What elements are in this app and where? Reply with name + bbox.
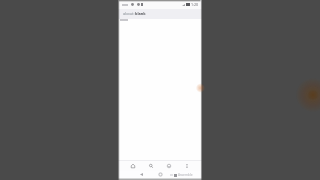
staticText: blank <box>135 11 146 16</box>
button[interactable]: Search <box>145 161 156 171</box>
staticText: Assemble <box>178 173 193 177</box>
button[interactable]: Tabs <box>163 161 174 171</box>
button[interactable]: Home <box>155 171 165 178</box>
button[interactable]: More options <box>181 161 192 171</box>
button[interactable]: Home <box>127 161 138 171</box>
staticText: 1:20 <box>191 2 199 7</box>
button[interactable]: Back <box>136 171 146 178</box>
staticText: about: <box>123 11 135 16</box>
